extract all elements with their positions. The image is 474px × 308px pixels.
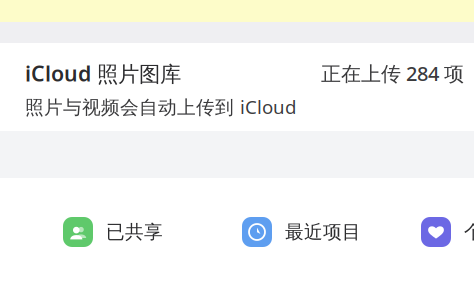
button[interactable]: Favourites bbox=[421, 204, 474, 260]
button[interactable]: Shared albums bbox=[63, 204, 242, 260]
staticText: 个人收藏 bbox=[464, 220, 474, 243]
button[interactable]: Recents bbox=[242, 204, 421, 260]
staticText: 照片与视频会自动上传到 iCloud bbox=[25, 94, 296, 119]
staticText: 正在上传 284 项 bbox=[321, 60, 464, 86]
staticText: iCloud 照片图库 bbox=[25, 59, 181, 87]
staticText: 已共享 bbox=[106, 220, 163, 243]
button[interactable]: iCloud 照片图库 bbox=[0, 43, 474, 131]
staticText: 最近项目 bbox=[285, 220, 361, 243]
